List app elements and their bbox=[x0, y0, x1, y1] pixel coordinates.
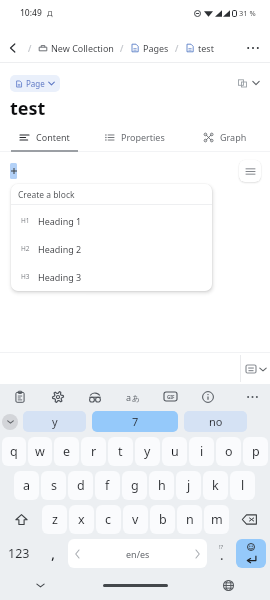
button[interactable]: z bbox=[42, 505, 67, 534]
button[interactable]: t bbox=[108, 437, 133, 466]
button[interactable]: , bbox=[40, 539, 66, 568]
staticText: e bbox=[63, 443, 71, 460]
staticText: h bbox=[158, 477, 166, 494]
staticText: H1 bbox=[21, 216, 38, 225]
button[interactable]: a bbox=[14, 471, 39, 500]
button[interactable]: en/es bbox=[68, 539, 207, 568]
button[interactable]: y bbox=[135, 437, 160, 466]
button[interactable]: d bbox=[68, 471, 93, 500]
button[interactable]: info bbox=[195, 384, 221, 409]
button[interactable]: Page bbox=[10, 75, 60, 92]
button[interactable]: Backspace bbox=[230, 505, 269, 534]
button[interactable]: More bbox=[239, 384, 265, 409]
staticText: H2 bbox=[21, 244, 38, 253]
button[interactable]: Graph bbox=[180, 125, 270, 152]
staticText: a bbox=[23, 477, 31, 494]
button[interactable]: l bbox=[230, 471, 255, 500]
button[interactable]: no bbox=[184, 411, 247, 432]
button[interactable]: e bbox=[54, 437, 79, 466]
button[interactable]: r bbox=[81, 437, 106, 466]
button[interactable]: Shift bbox=[1, 505, 41, 534]
button[interactable]: k bbox=[203, 471, 228, 500]
staticText: Heading 1 bbox=[38, 215, 82, 227]
staticText: H3 bbox=[21, 272, 38, 281]
staticText: / bbox=[175, 42, 179, 54]
staticText: w bbox=[35, 443, 45, 460]
staticText: no bbox=[209, 414, 223, 429]
button[interactable]: Content bbox=[0, 125, 90, 152]
button[interactable]: gear bbox=[45, 384, 71, 409]
button[interactable]: trans bbox=[120, 384, 146, 409]
button[interactable]: v bbox=[123, 505, 148, 534]
staticText: Graph bbox=[220, 131, 247, 143]
button[interactable]: u bbox=[162, 437, 187, 466]
button[interactable]: n bbox=[177, 505, 202, 534]
button[interactable]: test bbox=[184, 42, 215, 54]
button[interactable]: i bbox=[189, 437, 214, 466]
button[interactable]: y bbox=[23, 411, 86, 432]
button[interactable]: H3 bbox=[11, 263, 212, 290]
staticText: p bbox=[252, 443, 260, 460]
button[interactable]: New Collection bbox=[37, 42, 115, 54]
staticText: あ bbox=[132, 393, 141, 403]
staticText: u bbox=[171, 443, 179, 460]
button[interactable]: q bbox=[2, 437, 26, 466]
staticText: Content bbox=[36, 131, 70, 143]
staticText: test bbox=[198, 42, 214, 54]
button[interactable]: Block menu bbox=[239, 160, 261, 182]
button[interactable]: 123 bbox=[0, 539, 38, 568]
button[interactable]: h bbox=[149, 471, 174, 500]
staticText: i bbox=[200, 443, 204, 460]
staticText: b bbox=[159, 511, 167, 528]
button[interactable]: !? bbox=[208, 539, 235, 568]
button[interactable]: Keyboard settings bbox=[246, 365, 267, 373]
staticText: / bbox=[28, 42, 32, 54]
button[interactable]: emoji bbox=[82, 384, 108, 409]
button[interactable]: Add block bbox=[10, 163, 17, 179]
button[interactable]: H2 bbox=[11, 235, 212, 262]
button[interactable]: More options bbox=[242, 37, 264, 59]
staticText: x bbox=[78, 511, 85, 528]
staticText: y bbox=[144, 443, 151, 460]
button[interactable]: w bbox=[28, 437, 52, 466]
staticText: Pages bbox=[143, 42, 169, 54]
staticText: z bbox=[52, 511, 58, 528]
staticText: s bbox=[51, 477, 57, 494]
button[interactable]: Page options bbox=[238, 78, 260, 88]
button[interactable]: g bbox=[122, 471, 147, 500]
button[interactable]: j bbox=[176, 471, 201, 500]
button[interactable]: f bbox=[95, 471, 120, 500]
button[interactable]: Expand suggestions bbox=[2, 414, 18, 430]
staticText: d bbox=[77, 477, 85, 494]
staticText: Heading 2 bbox=[38, 243, 82, 255]
staticText: r bbox=[91, 443, 97, 460]
staticText: 7 bbox=[132, 414, 139, 429]
staticText: !? bbox=[219, 543, 224, 551]
staticText: y bbox=[52, 414, 58, 429]
button[interactable]: H1 bbox=[11, 207, 212, 234]
button[interactable]: gif bbox=[157, 384, 183, 409]
button[interactable]: clip bbox=[7, 384, 33, 409]
button[interactable]: Pages bbox=[129, 42, 170, 54]
staticText: 10:49 bbox=[20, 7, 42, 19]
button[interactable]: o bbox=[216, 437, 241, 466]
button[interactable]: p bbox=[243, 437, 268, 466]
staticText: Create a block bbox=[18, 189, 75, 201]
button[interactable]: Enter bbox=[236, 539, 266, 568]
button[interactable]: Back bbox=[3, 38, 23, 58]
button[interactable]: Properties bbox=[90, 125, 180, 152]
button[interactable]: s bbox=[41, 471, 66, 500]
staticText: m bbox=[211, 511, 223, 528]
button[interactable]: Hide keyboard bbox=[31, 576, 49, 594]
button[interactable]: Change language bbox=[219, 576, 237, 594]
button[interactable]: 7 bbox=[92, 411, 178, 432]
staticText: l bbox=[241, 477, 245, 494]
button[interactable]: c bbox=[96, 505, 121, 534]
button[interactable]: x bbox=[69, 505, 94, 534]
button[interactable]: m bbox=[204, 505, 229, 534]
staticText: f bbox=[105, 477, 110, 494]
button[interactable]: b bbox=[150, 505, 175, 534]
staticText: Properties bbox=[121, 131, 165, 143]
staticText: en/es bbox=[126, 548, 150, 560]
staticText: / bbox=[120, 42, 124, 54]
